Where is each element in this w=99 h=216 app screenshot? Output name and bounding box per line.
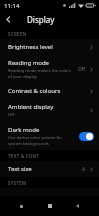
button[interactable]: Toggle on [79,132,94,141]
staticText: Reading mode makes the colors of your di… [8,68,75,79]
staticText: Ambient display [8,103,54,111]
staticText: SYSTEM [8,180,27,186]
staticText: SCREEN [8,31,27,37]
staticText: Reading mode [8,59,49,67]
button[interactable]: Text size [0,161,99,177]
staticText: 11:14 [4,2,20,10]
button[interactable]: Dark mode [0,122,99,150]
staticText: Text size [8,165,32,173]
staticText: Off [78,66,86,73]
button[interactable]: Ambient display [0,99,99,122]
staticText: Contrast & colours [8,87,61,95]
staticText: TEXT & FONT [8,153,40,159]
staticText: A [82,166,86,173]
button[interactable]: Back [0,11,17,28]
staticText: Use darker color palette for system back… [8,135,76,146]
button[interactable]: Contrast & colours [0,83,99,99]
staticText: Dark mode [8,126,40,134]
staticText: Brightness level [8,43,53,51]
staticText: Display [27,14,55,25]
button[interactable]: Home [43,199,57,213]
button[interactable]: Recents [14,199,28,213]
button[interactable]: Brightness level [0,39,99,55]
button[interactable]: Back [71,199,85,213]
button[interactable]: Reading mode [0,55,99,83]
staticText: Off [8,112,15,118]
